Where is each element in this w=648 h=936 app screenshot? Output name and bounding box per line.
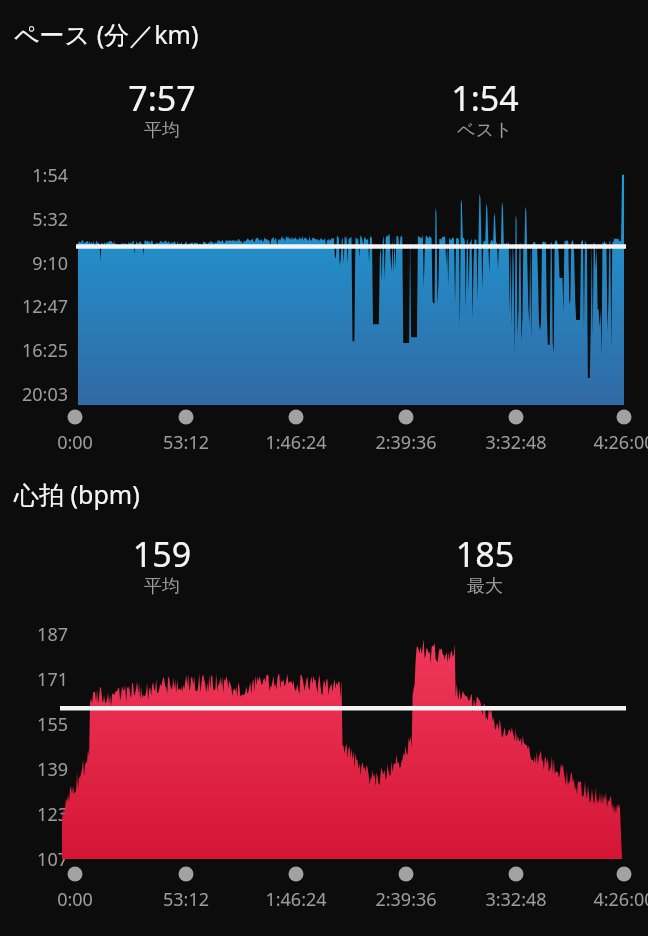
- staticText: 4:26:00: [564, 430, 648, 455]
- staticText: 53:12: [126, 430, 246, 455]
- staticText: 2:39:36: [346, 887, 466, 912]
- button[interactable]: 心拍 (bpm): [14, 477, 140, 511]
- staticText: 3:32:48: [456, 430, 576, 455]
- staticText: 最大: [395, 575, 575, 598]
- button[interactable]: [0, 170, 648, 405]
- staticText: 平均: [72, 119, 252, 142]
- staticText: 16:25: [0, 338, 68, 363]
- staticText: 0:00: [15, 430, 135, 455]
- button[interactable]: [0, 628, 648, 859]
- button[interactable]: 185: [395, 531, 575, 577]
- staticText: 2:39:36: [346, 430, 466, 455]
- staticText: 107: [0, 847, 68, 872]
- staticText: 159: [72, 531, 252, 577]
- staticText: 5:32: [0, 207, 68, 232]
- staticText: 171: [0, 667, 68, 692]
- staticText: 1:54: [0, 163, 68, 188]
- staticText: 139: [0, 757, 68, 782]
- staticText: 4:26:00: [564, 887, 648, 912]
- staticText: 平均: [72, 575, 252, 598]
- staticText: 9:10: [0, 251, 68, 276]
- button[interactable]: 7:57: [72, 75, 252, 121]
- button[interactable]: ペース (分／km): [14, 17, 199, 51]
- staticText: 3:32:48: [456, 887, 576, 912]
- staticText: 187: [0, 622, 68, 647]
- staticText: 12:47: [0, 294, 68, 319]
- staticText: ベスト: [395, 119, 575, 142]
- button[interactable]: 1:54: [395, 75, 575, 121]
- staticText: 123: [0, 802, 68, 827]
- staticText: 1:46:24: [236, 887, 356, 912]
- staticText: 155: [0, 712, 68, 737]
- staticText: 1:46:24: [236, 430, 356, 455]
- button[interactable]: 159: [72, 531, 252, 577]
- staticText: 0:00: [15, 887, 135, 912]
- staticText: 7:57: [72, 75, 252, 121]
- staticText: 20:03: [0, 382, 68, 407]
- staticText: 185: [395, 531, 575, 577]
- staticText: 53:12: [126, 887, 246, 912]
- staticText: 1:54: [395, 75, 575, 121]
